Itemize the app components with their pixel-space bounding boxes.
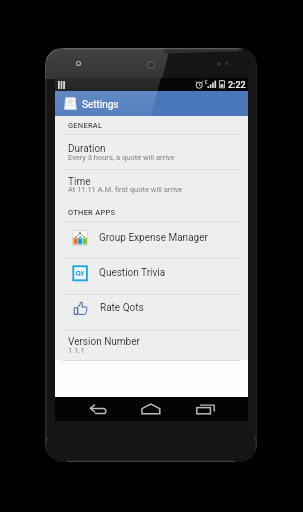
staticText: Settings (82, 99, 119, 111)
staticText: OTHER APPS (68, 208, 116, 217)
button[interactable]: Back (78, 397, 116, 421)
staticText: Time (68, 176, 91, 188)
staticText: Every 3 hours, a quote will arrive (68, 153, 175, 162)
button[interactable]: Rate Qots (55, 295, 248, 321)
button[interactable]: Duration (55, 135, 248, 167)
button[interactable]: Group Expense Manager (55, 225, 248, 251)
button[interactable]: Recent apps (186, 397, 224, 421)
button[interactable]: Time (55, 168, 248, 199)
staticText: Question Trivia (99, 267, 166, 279)
staticText: 1.1.1 (68, 346, 85, 355)
button[interactable]: Question Trivia (55, 260, 248, 286)
staticText: Duration (68, 143, 106, 155)
button[interactable]: Home (131, 397, 171, 421)
staticText: 2:22 (228, 80, 246, 91)
staticText: Group Expense Manager (99, 232, 208, 244)
staticText: Rate Qots (100, 302, 144, 314)
button[interactable]: Version Number (55, 328, 248, 359)
staticText: GENERAL (68, 121, 103, 130)
staticText: At 11:11 A.M. first quote will arrive (68, 185, 183, 194)
staticText: Version Number (68, 336, 140, 348)
